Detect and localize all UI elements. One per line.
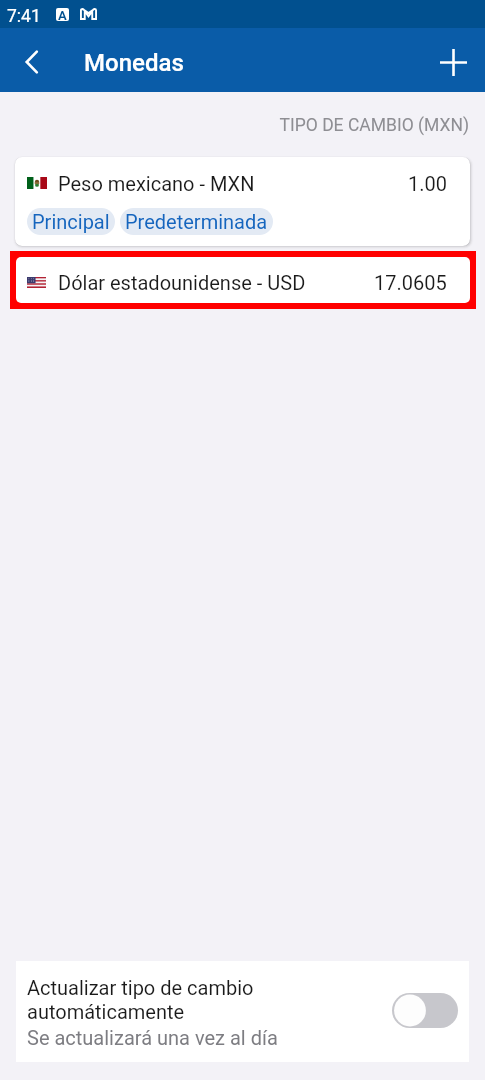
button[interactable]: Back	[10, 40, 54, 84]
staticText: Monedas	[84, 49, 184, 77]
staticText: 1.00	[408, 172, 447, 195]
staticText: Se actualizará una vez al día	[27, 1026, 278, 1049]
staticText: Dólar estadounidense - USD	[58, 271, 306, 294]
button[interactable]: Actualizar tipo de cambio automáticament…	[16, 961, 469, 1062]
button[interactable]: Dólar estadounidense - USD	[16, 257, 470, 303]
staticText: Principal	[32, 210, 110, 233]
staticText: Predeterminada	[125, 210, 268, 233]
button[interactable]: Peso mexicano - MXN	[15, 157, 470, 246]
staticText: 7:41	[7, 6, 41, 27]
button[interactable]: Add	[431, 40, 475, 84]
staticText: TIPO DE CAMBIO (MXN)	[0, 115, 469, 136]
staticText: Peso mexicano - MXN	[58, 172, 255, 195]
staticText: Actualizar tipo de cambio automáticament…	[27, 976, 254, 1024]
button[interactable]: Actualizar tipo de cambio automáticament…	[392, 993, 458, 1028]
button[interactable]: Predeterminada	[120, 208, 273, 235]
staticText: A	[58, 8, 67, 21]
staticText: 17.0605	[374, 271, 447, 294]
button[interactable]: Principal	[27, 208, 115, 235]
